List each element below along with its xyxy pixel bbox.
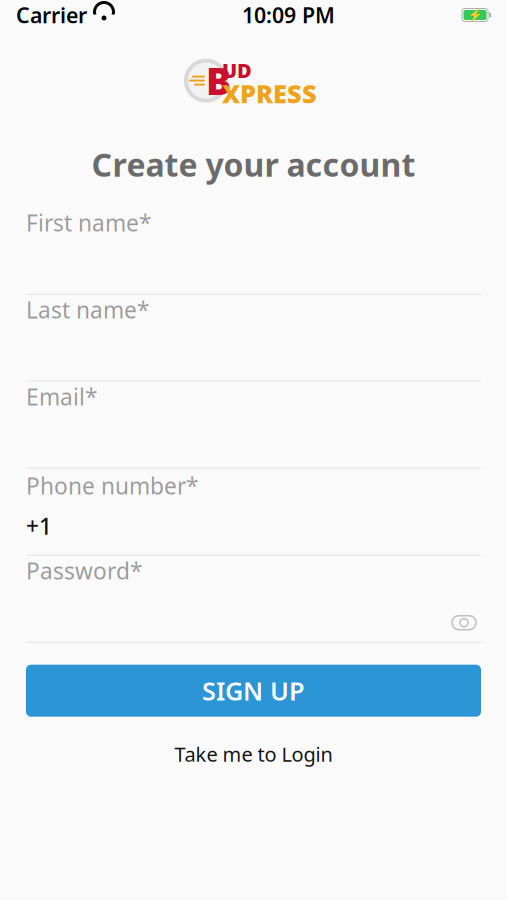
staticText: 10:09 PM: [242, 1, 335, 29]
staticText: Take me to Login: [174, 741, 332, 767]
staticText: Carrier: [16, 1, 87, 29]
staticText: Create your account: [91, 143, 415, 186]
staticText: SIGN UP: [202, 674, 305, 707]
staticText: UD: [222, 57, 252, 84]
staticText: +1: [26, 511, 52, 541]
staticText: ⚡: [467, 8, 482, 22]
staticText: XPRESS: [222, 77, 317, 110]
staticText: Email*: [26, 382, 97, 412]
staticText: First name*: [26, 208, 151, 238]
button[interactable]: Show password: [447, 610, 481, 636]
staticText: Password*: [26, 556, 142, 586]
staticText: B: [206, 56, 231, 105]
button[interactable]: Take me to Login: [154, 735, 352, 773]
staticText: Phone number*: [26, 471, 198, 501]
button[interactable]: SIGN UP: [26, 665, 481, 717]
staticText: Last name*: [26, 295, 149, 325]
